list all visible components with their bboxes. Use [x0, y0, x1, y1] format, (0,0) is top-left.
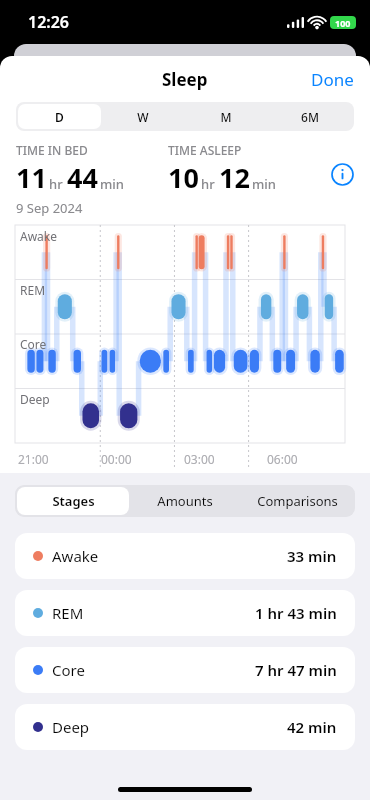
staticText: M — [220, 109, 232, 125]
staticText: 00:00 — [101, 451, 132, 467]
staticText: 42 min — [287, 717, 337, 737]
button[interactable]: Information — [331, 163, 354, 186]
staticText: 12:26 — [28, 11, 70, 33]
button[interactable]: M — [184, 104, 268, 129]
button[interactable]: W — [101, 104, 184, 129]
button[interactable]: REM — [15, 590, 355, 636]
staticText: 44 — [67, 159, 98, 196]
staticText: 12 — [219, 159, 250, 196]
staticText: hr — [49, 175, 63, 193]
staticText: 06:00 — [267, 451, 298, 467]
staticText: min — [100, 175, 124, 193]
staticText: REM — [52, 603, 84, 623]
button[interactable]: Deep — [15, 704, 355, 750]
staticText: Awake — [52, 546, 99, 566]
button[interactable]: Stages — [17, 487, 129, 515]
staticText: Amounts — [157, 492, 213, 510]
button[interactable]: Amounts — [129, 487, 241, 515]
staticText: 11 — [16, 159, 47, 196]
staticText: Comparisons — [257, 492, 338, 510]
button[interactable]: Done — [295, 58, 370, 101]
staticText: min — [252, 175, 276, 193]
button[interactable]: Comparisons — [241, 487, 353, 515]
staticText: Sleep — [162, 68, 208, 91]
button[interactable]: D — [18, 104, 101, 129]
staticText: Stages — [52, 492, 95, 510]
staticText: 21:00 — [18, 451, 49, 467]
staticText: 9 Sep 2024 — [16, 199, 83, 217]
staticText: 7 hr 47 min — [255, 660, 337, 680]
staticText: Done — [311, 68, 354, 91]
staticText: D — [55, 109, 64, 125]
button[interactable]: Core — [15, 647, 355, 693]
staticText: REM — [20, 282, 46, 298]
staticText: Awake — [20, 228, 58, 244]
staticText: 03:00 — [184, 451, 215, 467]
staticText: W — [137, 109, 149, 125]
staticText: Deep — [52, 717, 90, 737]
staticText: Core — [20, 336, 47, 352]
staticText: 6M — [301, 109, 319, 125]
staticText: TIME ASLEEP — [168, 142, 242, 158]
staticText: 1 hr 43 min — [255, 603, 337, 623]
staticText: TIME IN BED — [16, 142, 88, 158]
button[interactable]: 6M — [268, 104, 352, 129]
button[interactable]: Awake — [15, 533, 355, 579]
staticText: 33 min — [287, 546, 337, 566]
staticText: hr — [201, 175, 215, 193]
staticText: Core — [52, 660, 85, 680]
staticText: 100 — [335, 17, 351, 29]
staticText: 10 — [168, 159, 199, 196]
staticText: Deep — [20, 391, 50, 407]
